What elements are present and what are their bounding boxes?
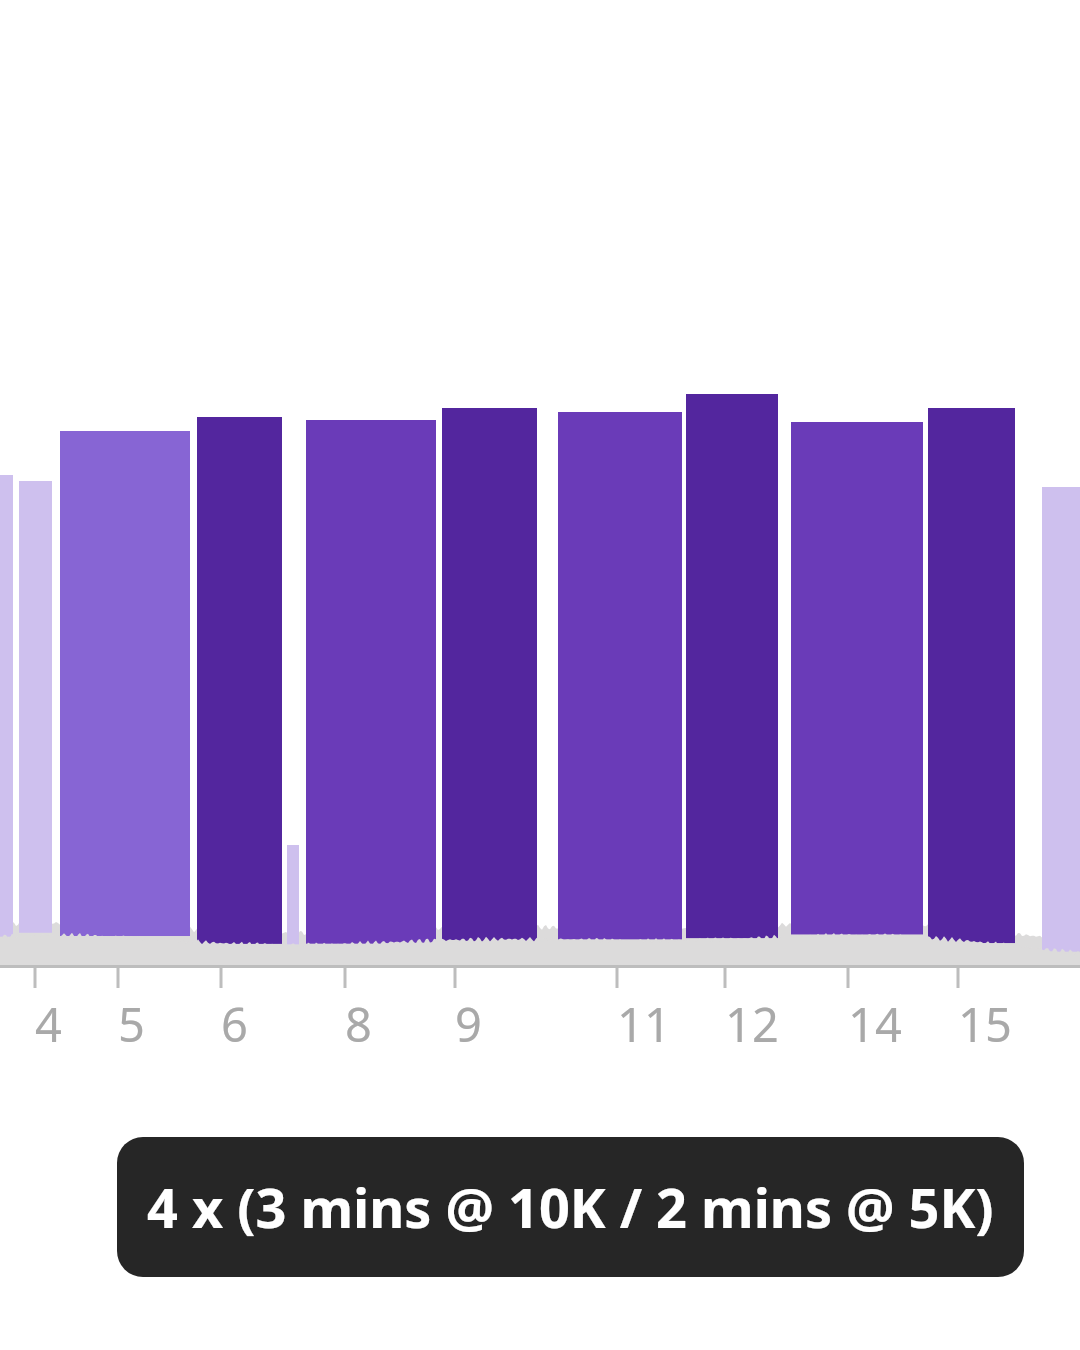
staticText: 14 xyxy=(848,992,902,1056)
staticText: 12 xyxy=(725,992,779,1056)
staticText: 11 xyxy=(617,992,671,1056)
staticText: 5 xyxy=(118,992,145,1056)
staticText: 9 xyxy=(455,992,482,1056)
staticText: 4 xyxy=(35,992,62,1056)
staticText: 6 xyxy=(221,992,248,1056)
staticText: 15 xyxy=(958,992,1012,1056)
staticText: 4 x (3 mins @ 10K / 2 mins @ 5K) xyxy=(147,1170,994,1244)
staticText: 8 xyxy=(345,992,372,1056)
button[interactable]: 4 x (3 mins @ 10K / 2 mins @ 5K) xyxy=(117,1137,1024,1277)
